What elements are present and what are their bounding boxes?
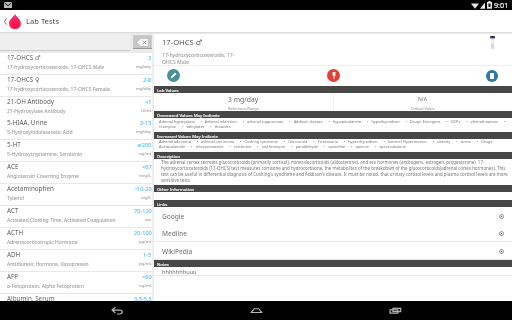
staticText: <60	[142, 273, 152, 281]
staticText: 20-100	[134, 229, 152, 237]
staticText: Lab Tests	[26, 16, 60, 26]
staticText: 17-hydroxycorticosteroids, 17- OHCS Male	[162, 52, 235, 66]
staticText: pg/mL	[139, 239, 152, 245]
button[interactable]: WikiPedia	[154, 242, 512, 260]
staticText: Tylenol	[7, 195, 24, 202]
staticText: 3 mg/day	[228, 95, 259, 104]
button[interactable]: 5-HIAA, Urine	[0, 118, 152, 140]
staticText: ADH	[7, 250, 21, 259]
staticText: 5-HIAA, Urine	[7, 118, 48, 127]
staticText: 1-5	[143, 251, 152, 259]
staticText: Notes	[157, 261, 169, 267]
staticText: AFP	[7, 272, 19, 281]
staticText: Adrenal hyperplasia • Adrenal infarction…	[159, 119, 510, 129]
staticText: ng/mL	[139, 151, 152, 157]
staticText: ng/mL	[139, 283, 152, 289]
staticText: mcg/L	[139, 173, 152, 179]
staticText: 17-OHCS ♂	[7, 53, 41, 62]
button[interactable]: ADH	[0, 250, 152, 272]
staticText: ACT	[7, 206, 19, 215]
staticText: Links	[157, 201, 168, 207]
staticText: 17-hydroxycorticosteroids, 17-OHCS Male	[7, 64, 105, 71]
staticText: ACTH	[7, 228, 24, 237]
staticText: Acetaminophen	[7, 184, 54, 193]
staticText: 5-HT	[7, 140, 21, 149]
staticText: mg/day	[136, 86, 152, 92]
button[interactable]: Pin	[327, 69, 340, 82]
staticText: 17-hydroxycorticosteroids, 17-OHCS Femal…	[7, 86, 110, 93]
staticText: Albumin, Serum	[7, 294, 55, 303]
staticText: Activated Clotting Time, Activated Coagu…	[7, 217, 116, 224]
staticText: 5-Hydroxytryptamine, Serotonin	[7, 151, 83, 158]
button[interactable]: Clear search text	[133, 35, 152, 49]
staticText: mg/day	[136, 129, 152, 135]
staticText: Lab Values	[157, 87, 179, 93]
staticText: α-Fetoprotein, Alpha Fetoprotein	[7, 283, 84, 290]
staticText: U/mL	[141, 108, 152, 114]
staticText: Adrenal adenoma • adrenal carcinoma • Cu…	[159, 139, 510, 149]
staticText: Other Information	[157, 186, 195, 192]
staticText: <67	[142, 163, 152, 171]
staticText: Description	[157, 153, 181, 159]
staticText: 3	[148, 54, 152, 62]
staticText: sec	[145, 217, 152, 223]
staticText: Critical Value	[411, 106, 435, 111]
staticText: 21-Hydroxylase Antibody	[7, 108, 66, 115]
staticText: 5-Hydroxyindolesacetic Acid	[7, 129, 73, 136]
button[interactable]: Search	[0, 33, 130, 51]
staticText: 3-15	[140, 119, 152, 127]
button[interactable]: Notes	[486, 70, 498, 82]
button[interactable]: ACTH	[0, 228, 152, 250]
button[interactable]: Edit	[167, 69, 180, 82]
button[interactable]: Acetaminophen	[0, 184, 152, 206]
button[interactable]: Navigate up	[0, 11, 10, 32]
staticText: mg/day	[136, 64, 152, 70]
button[interactable]: Albumin, Serum	[0, 294, 152, 316]
staticText: 3.5-5.5	[134, 295, 152, 303]
staticText: Angiotensin Coverting Enzyme	[7, 173, 79, 180]
staticText: Antidiuretic Hormone, Vasopressin	[7, 261, 89, 268]
staticText: ≤200	[137, 141, 152, 149]
button[interactable]: 5-HT	[0, 140, 152, 162]
staticText: 70-120	[134, 207, 152, 215]
staticText: 17-OHCS ♂	[162, 37, 203, 47]
staticText: 21-OH Antibody	[7, 97, 55, 106]
button[interactable]: ACE	[0, 162, 152, 184]
staticText: 2-8	[143, 76, 152, 84]
button[interactable]: Google	[154, 207, 512, 225]
staticText: •10-20	[135, 185, 152, 193]
staticText: Decreased Values May Indicate	[157, 112, 220, 118]
button[interactable]: Home	[234, 301, 278, 320]
staticText: N/A	[418, 96, 427, 103]
staticText: hhhhhhhuuu	[162, 268, 197, 276]
staticText: Increased Values May Indicate	[157, 133, 219, 139]
staticText: Medline	[162, 229, 187, 238]
staticText: 9:01	[494, 0, 509, 10]
staticText: <1	[145, 98, 152, 106]
button[interactable]: ACT	[0, 206, 152, 228]
staticText: pg/mL	[139, 261, 152, 267]
button[interactable]: Back	[95, 301, 139, 320]
button[interactable]: Medline	[154, 224, 512, 242]
button[interactable]: AFP	[0, 272, 152, 294]
staticText: Reference Range	[228, 106, 259, 111]
staticText: 17-OHCS ♀	[7, 75, 40, 84]
staticText: ACE	[7, 162, 19, 171]
staticText: Adrenocorticotropic Hormone	[7, 239, 78, 246]
staticText: The adrenal cortex secretes glucocortico…	[161, 159, 508, 183]
staticText: Google	[162, 212, 185, 221]
button[interactable]: 17-OHCS ♂	[0, 53, 152, 75]
button[interactable]: Recent apps	[373, 301, 417, 320]
button[interactable]: 21-OH Antibody	[0, 97, 152, 119]
staticText: mg/L	[141, 195, 152, 201]
button[interactable]: 17-OHCS ♀	[0, 75, 152, 97]
staticText: WikiPedia	[162, 247, 193, 256]
